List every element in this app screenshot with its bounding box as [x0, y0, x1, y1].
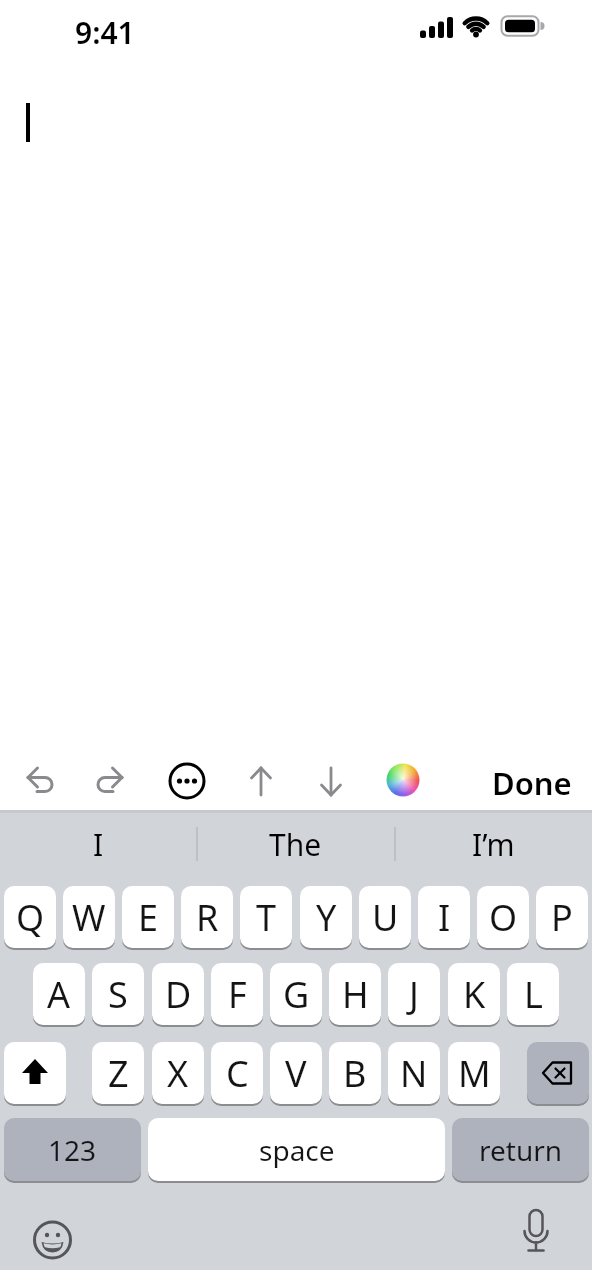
staticText: D: [165, 970, 192, 1019]
button[interactable]: [169, 763, 205, 799]
button[interactable]: Y: [300, 886, 352, 948]
button[interactable]: U: [359, 886, 411, 948]
button[interactable]: N: [388, 1042, 440, 1104]
button[interactable]: [527, 1042, 589, 1104]
button[interactable]: S: [92, 963, 144, 1025]
button[interactable]: return: [452, 1118, 589, 1181]
staticText: I: [438, 893, 451, 942]
staticText: T: [256, 893, 277, 942]
button[interactable]: [516, 1206, 556, 1258]
button[interactable]: [93, 763, 129, 799]
button[interactable]: X: [152, 1042, 204, 1104]
staticText: Z: [108, 1049, 129, 1098]
button[interactable]: R: [181, 886, 233, 948]
staticText: S: [108, 970, 128, 1019]
staticText: K: [463, 970, 486, 1019]
button[interactable]: I: [4, 812, 192, 876]
staticText: O: [489, 893, 518, 942]
button[interactable]: K: [448, 963, 500, 1025]
button[interactable]: C: [211, 1042, 263, 1104]
button[interactable]: D: [152, 963, 204, 1025]
staticText: J: [409, 970, 419, 1019]
staticText: A: [47, 970, 71, 1019]
staticText: X: [167, 1049, 189, 1098]
staticText: G: [283, 970, 310, 1019]
button[interactable]: space: [148, 1118, 445, 1181]
button[interactable]: M: [448, 1042, 500, 1104]
staticText: U: [372, 893, 399, 942]
staticText: I’m: [472, 824, 515, 865]
staticText: V: [285, 1049, 307, 1098]
button[interactable]: A: [33, 963, 85, 1025]
button[interactable]: J: [388, 963, 440, 1025]
staticText: H: [342, 970, 369, 1019]
button[interactable]: The: [200, 812, 390, 876]
button[interactable]: V: [270, 1042, 322, 1104]
button[interactable]: W: [63, 886, 115, 948]
staticText: 123: [48, 1131, 97, 1169]
staticText: I: [93, 824, 104, 865]
button[interactable]: [313, 763, 349, 799]
button[interactable]: H: [329, 963, 381, 1025]
staticText: C: [226, 1049, 249, 1098]
button[interactable]: L: [507, 963, 559, 1025]
button[interactable]: 123: [4, 1118, 141, 1181]
button[interactable]: I’m: [398, 812, 588, 876]
button[interactable]: [4, 1042, 66, 1104]
staticText: N: [400, 1049, 428, 1098]
button[interactable]: E: [122, 886, 174, 948]
staticText: E: [138, 893, 159, 942]
staticText: Done: [492, 762, 572, 800]
button[interactable]: Q: [4, 886, 56, 948]
staticText: P: [551, 893, 573, 942]
button[interactable]: [21, 763, 57, 799]
staticText: F: [228, 970, 247, 1019]
staticText: return: [479, 1131, 563, 1169]
button[interactable]: F: [211, 963, 263, 1025]
staticText: L: [524, 970, 543, 1019]
staticText: B: [343, 1049, 367, 1098]
button[interactable]: T: [240, 886, 292, 948]
staticText: M: [458, 1049, 491, 1098]
button[interactable]: [243, 763, 279, 799]
staticText: R: [196, 893, 219, 942]
staticText: The: [269, 824, 322, 865]
button[interactable]: G: [270, 963, 322, 1025]
button[interactable]: Done: [480, 762, 572, 800]
staticText: W: [72, 893, 106, 942]
staticText: Q: [16, 893, 45, 942]
button[interactable]: [32, 1219, 74, 1261]
staticText: 9:41: [75, 12, 135, 46]
button[interactable]: [385, 762, 421, 798]
staticText: Y: [316, 893, 337, 942]
button[interactable]: P: [536, 886, 588, 948]
button[interactable]: O: [477, 886, 529, 948]
button[interactable]: B: [329, 1042, 381, 1104]
staticText: space: [259, 1131, 335, 1169]
button[interactable]: I: [418, 886, 470, 948]
button[interactable]: Z: [92, 1042, 144, 1104]
